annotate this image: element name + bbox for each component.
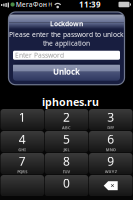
staticText: МегаФон: [16, 0, 47, 9]
staticText: 8: [63, 153, 70, 169]
staticText: iphones.ru: [42, 95, 99, 109]
staticText: 5: [63, 131, 70, 147]
button[interactable]: 6: [89, 131, 132, 152]
button[interactable]: 1: [0, 109, 44, 130]
staticText: 9: [107, 153, 114, 169]
button[interactable]: 5: [45, 131, 88, 152]
button[interactable]: 3: [89, 109, 132, 130]
staticText: GHI: [18, 147, 26, 152]
button[interactable]: 0: [45, 175, 88, 196]
staticText: ✕: [110, 183, 114, 189]
staticText: Lockdown: [50, 19, 83, 28]
staticText: 11:39: [79, 0, 101, 10]
staticText: JKL: [63, 147, 69, 152]
staticText: DEF: [107, 125, 114, 130]
button[interactable]: 7: [0, 153, 44, 174]
staticText: 7: [19, 153, 26, 169]
staticText: the application: [43, 39, 90, 48]
staticText: TUV: [62, 169, 70, 174]
staticText: ABC: [62, 125, 71, 130]
staticText: H: [48, 1, 52, 8]
staticText: 0: [63, 175, 70, 191]
staticText: 3: [107, 109, 114, 125]
button[interactable]: 8: [45, 153, 88, 174]
staticText: 6: [107, 131, 114, 147]
staticText: 2: [63, 109, 70, 125]
staticText: PQRS: [17, 169, 27, 174]
staticText: Unlock: [53, 66, 80, 77]
button[interactable]: 2: [45, 109, 88, 130]
staticText: Please enter the password to unlock: [9, 30, 124, 39]
button[interactable]: Unlock: [13, 63, 120, 81]
staticText: WXYZ: [105, 169, 117, 174]
button[interactable]: 4: [0, 131, 44, 152]
staticText: 1: [19, 109, 26, 125]
staticText: 4: [19, 131, 26, 147]
staticText: Enter Password: [15, 51, 64, 60]
button[interactable]: 9: [89, 153, 132, 174]
staticText: MNO: [106, 147, 116, 152]
button[interactable]: Delete: [89, 175, 132, 196]
